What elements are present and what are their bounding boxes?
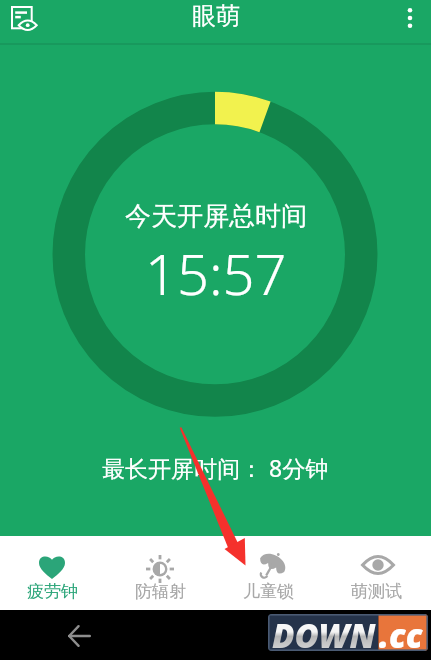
button[interactable]: 防辐射	[107, 536, 215, 610]
staticText: 15:57	[145, 235, 287, 311]
staticText: 萌测试	[351, 581, 402, 602]
staticText: 儿童锁	[243, 581, 294, 602]
staticText: 最长开屏时间： 8分钟	[102, 452, 329, 483]
button[interactable]: 萌测试	[323, 536, 431, 610]
staticText: 疲劳钟	[27, 581, 78, 602]
button[interactable]: Usage report	[6, 0, 42, 36]
button[interactable]: 儿童锁	[215, 536, 323, 610]
staticText: 今天开屏总时间	[125, 200, 307, 233]
staticText: .cc	[379, 614, 423, 650]
staticText: 防辐射	[135, 581, 186, 602]
staticText: DOWN	[272, 614, 376, 650]
button[interactable]: 疲劳钟	[0, 536, 107, 610]
button[interactable]: Back	[59, 616, 99, 656]
button[interactable]: More options	[392, 0, 428, 36]
staticText: 眼萌	[192, 1, 240, 31]
